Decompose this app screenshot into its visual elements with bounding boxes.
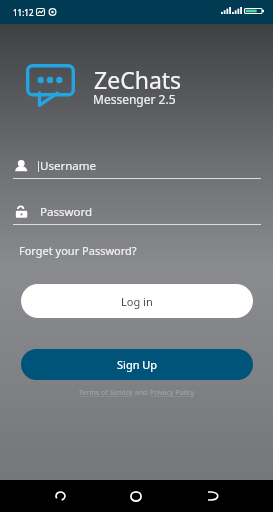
button[interactable]: Log in [21, 284, 253, 318]
staticText: Log in [121, 294, 153, 309]
staticText: Username [40, 158, 96, 174]
button[interactable]: Sign Up [21, 349, 253, 380]
button[interactable]: Privacy Policy [150, 388, 195, 398]
staticText: Messenger 2.5 [93, 91, 176, 107]
staticText: 11:12 [13, 7, 34, 18]
staticText: ZeChats [94, 64, 182, 95]
button[interactable]: Username [15, 154, 273, 178]
button[interactable]: Forget your Password? [19, 243, 137, 258]
button[interactable]: Recent apps [190, 484, 234, 508]
staticText: and [133, 388, 150, 398]
staticText: Sign Up [117, 357, 158, 372]
button[interactable]: Password [15, 200, 273, 224]
staticText: Password [40, 204, 93, 220]
button[interactable]: Back [38, 484, 82, 508]
button[interactable]: Terms of Service [79, 388, 133, 398]
button[interactable]: Home [114, 484, 158, 508]
